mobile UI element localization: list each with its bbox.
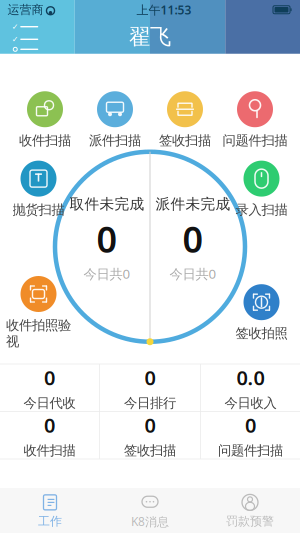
button[interactable]: 0.0 — [200, 364, 300, 411]
staticText: 工作 — [38, 514, 62, 529]
staticText: 0 — [44, 364, 55, 391]
staticText: 收件扫描 — [23, 442, 75, 459]
staticText: 0.0 — [236, 364, 264, 391]
staticText: 抛货扫描 — [12, 202, 64, 218]
staticText: 0 — [144, 364, 155, 391]
button[interactable]: K8消息 — [100, 489, 200, 533]
button[interactable]: 问题件扫描 — [220, 91, 290, 149]
staticText: 收件拍照验视 — [6, 317, 71, 350]
staticText: 今日收入 — [224, 395, 276, 411]
button[interactable]: 收件拍照验视 — [3, 276, 73, 350]
staticText: 0 — [182, 215, 203, 263]
staticText: 运营商 — [7, 2, 43, 17]
staticText: 今日共0 — [83, 265, 130, 282]
staticText: 签收扫描 — [159, 132, 211, 149]
staticText: 签收扫描 — [124, 442, 176, 459]
staticText: 问题件扫描 — [222, 132, 287, 149]
staticText: 派件扫描 — [89, 132, 141, 149]
staticText: 录入扫描 — [235, 202, 287, 218]
staticText: 0 — [44, 412, 55, 438]
button[interactable]: 罚款预警 — [200, 489, 300, 533]
button[interactable]: 抛货扫描 — [3, 161, 73, 218]
staticText: 签收拍照 — [235, 325, 287, 342]
button[interactable]: 工作 — [0, 489, 100, 533]
staticText: 今日代收 — [23, 395, 75, 411]
button[interactable]: 0 — [200, 412, 300, 459]
button[interactable]: 0 — [100, 364, 200, 411]
button[interactable]: 0 — [0, 364, 99, 411]
staticText: 今日共0 — [169, 265, 216, 282]
staticText: ✓ — [12, 35, 19, 44]
staticText: 问题件扫描 — [218, 442, 283, 459]
button[interactable]: 录入扫描 — [226, 161, 296, 218]
staticText: ✓ — [12, 22, 19, 31]
button[interactable]: 派件扫描 — [80, 91, 150, 149]
button[interactable]: 0 — [0, 412, 99, 459]
staticText: 翟飞 — [129, 24, 171, 50]
staticText: 取件未完成 — [69, 195, 144, 213]
button[interactable]: Menu — [3, 20, 47, 54]
staticText: 罚款预警 — [226, 514, 274, 529]
staticText: 今日排行 — [124, 395, 176, 411]
staticText: 派件未完成 — [155, 195, 230, 213]
staticText: 收件扫描 — [19, 132, 71, 149]
button[interactable]: 收件扫描 — [10, 91, 80, 149]
staticText: K8消息 — [131, 513, 169, 529]
staticText: 0 — [245, 412, 256, 438]
staticText: 0 — [96, 215, 117, 263]
button[interactable]: 0 — [100, 412, 200, 459]
staticText: 上午11:53 — [136, 2, 191, 18]
button[interactable]: 签收拍照 — [226, 284, 296, 342]
staticText: 0 — [144, 412, 155, 438]
button[interactable]: 签收扫描 — [150, 91, 220, 149]
